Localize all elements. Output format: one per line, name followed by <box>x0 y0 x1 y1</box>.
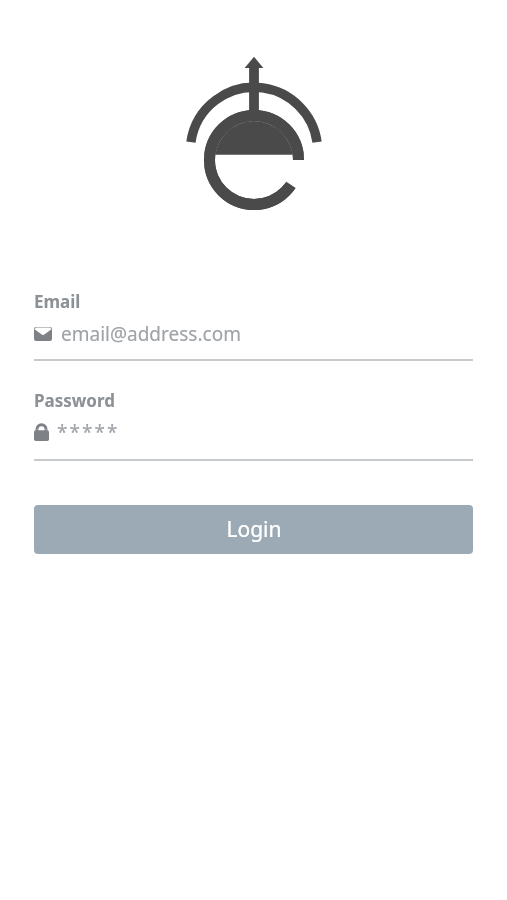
staticText: Email <box>34 290 81 313</box>
staticText: ***** <box>57 419 120 445</box>
staticText: Login <box>226 515 282 544</box>
staticText: email@address.com <box>61 321 241 347</box>
button[interactable]: Login <box>34 505 473 554</box>
other: Email <box>34 327 52 341</box>
staticText: Password <box>34 389 115 412</box>
button[interactable]: Email <box>34 321 473 347</box>
button[interactable]: Password <box>34 419 473 445</box>
other: Password <box>34 423 49 441</box>
